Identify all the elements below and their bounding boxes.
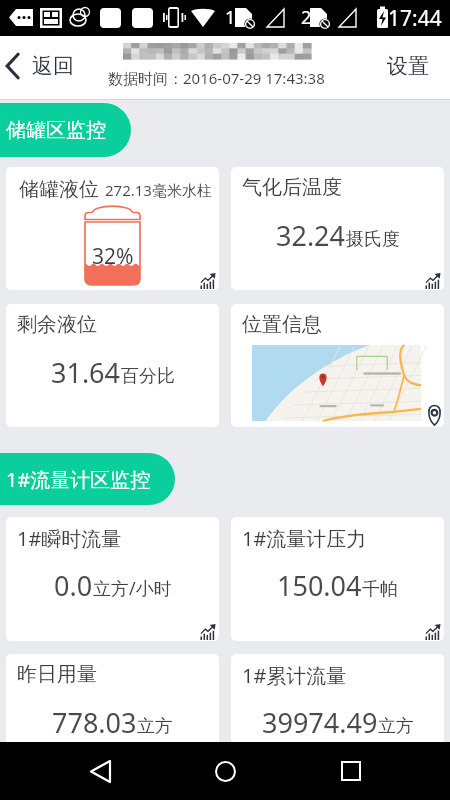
staticText: 1#流量计区监控 — [6, 466, 151, 493]
staticText: 39974.49 — [262, 704, 378, 741]
staticText: 272.13毫米水柱 — [105, 180, 212, 200]
staticText: 数据时间：2016-07-29 17:43:38 — [108, 68, 325, 88]
staticText: 立方 — [378, 715, 414, 738]
staticText: 778.03 — [52, 704, 137, 741]
staticText: 2 — [301, 5, 312, 30]
button[interactable]: 1#流量计区监控 — [0, 453, 175, 505]
button[interactable]: 剩余液位 — [6, 304, 219, 427]
button[interactable]: 气化后温度 — [231, 167, 444, 290]
staticText: 储罐液位 — [19, 177, 99, 202]
staticText: 千帕 — [362, 578, 398, 601]
button[interactable]: Back — [74, 745, 126, 797]
staticText: 1 — [225, 5, 236, 30]
button[interactable]: 返回 — [0, 44, 80, 88]
button[interactable]: Recents — [325, 745, 377, 797]
button[interactable]: 1#流量计压力 — [231, 517, 444, 641]
staticText: 立方/小时 — [93, 576, 172, 601]
button[interactable]: 昨日用量 — [6, 654, 219, 742]
staticText: 气化后温度 — [242, 175, 342, 200]
staticText: 31.64 — [51, 354, 121, 391]
staticText: 1#累计流量 — [242, 662, 347, 689]
staticText: 1#流量计压力 — [242, 525, 367, 552]
button[interactable]: 1#累计流量 — [231, 654, 444, 742]
button[interactable]: 储罐液位 — [6, 167, 219, 290]
staticText: 17:44 — [388, 4, 442, 33]
button[interactable]: Home — [199, 745, 251, 797]
button[interactable]: Chart — [200, 624, 216, 640]
button[interactable]: 1#瞬时流量 — [6, 517, 219, 641]
staticText: 储罐区监控 — [6, 118, 106, 143]
button[interactable]: Chart — [200, 273, 216, 289]
staticText: 位置信息 — [242, 312, 322, 337]
button[interactable]: 设置 — [381, 45, 435, 87]
staticText: 32.24 — [276, 217, 346, 254]
staticText: 立方 — [137, 715, 173, 738]
button[interactable]: Chart — [425, 273, 441, 289]
staticText: 设置 — [387, 53, 429, 79]
button[interactable]: 位置信息 — [231, 304, 444, 427]
staticText: 返回 — [32, 53, 74, 79]
button[interactable]: Location — [428, 406, 441, 426]
button[interactable]: 储罐区监控 — [0, 103, 131, 157]
button[interactable]: Chart — [425, 624, 441, 640]
staticText: 0.0 — [54, 567, 93, 604]
staticText: 百分比 — [121, 365, 175, 388]
staticText: 32% — [92, 242, 134, 271]
staticText: 剩余液位 — [17, 312, 97, 337]
staticText: 昨日用量 — [17, 662, 97, 687]
staticText: 摄氏度 — [346, 228, 400, 251]
staticText: 150.04 — [277, 567, 362, 604]
staticText: 1#瞬时流量 — [17, 525, 122, 552]
